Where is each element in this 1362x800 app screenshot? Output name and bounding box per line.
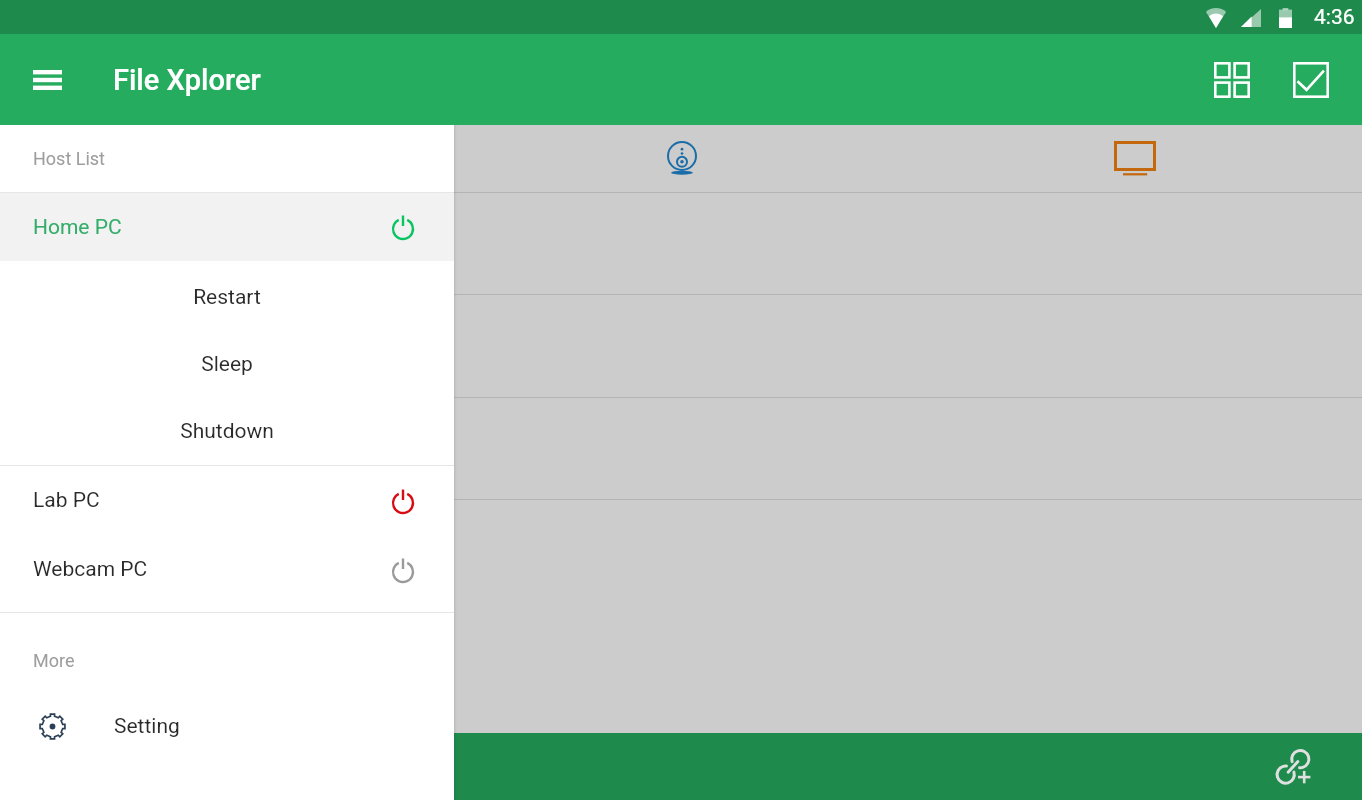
button[interactable]: Restart <box>0 264 454 331</box>
button[interactable]: Desktop PC <box>1107 130 1163 186</box>
button[interactable]: Open navigation drawer <box>9 42 85 118</box>
button[interactable]: Sleep <box>0 331 454 398</box>
staticText: Shutdown <box>180 419 274 444</box>
staticText: Webcam PC <box>33 557 383 582</box>
staticText: File Xplorer <box>113 63 261 97</box>
button[interactable]: Setting <box>0 707 454 745</box>
button[interactable]: Grid view <box>1197 45 1267 115</box>
button[interactable]: Power Webcam PC <box>383 550 423 590</box>
button[interactable]: Shutdown <box>0 398 454 465</box>
staticText: 4:36 <box>1314 5 1355 30</box>
button[interactable]: Lab PC <box>0 466 454 535</box>
staticText: Host List <box>33 148 105 169</box>
button[interactable]: Webcam PC <box>654 130 710 186</box>
staticText: Lab PC <box>33 488 383 513</box>
staticText: Sleep <box>201 352 253 377</box>
button[interactable]: Power Home PC <box>383 207 423 247</box>
button[interactable]: Webcam PC <box>0 535 454 604</box>
staticText: Restart <box>193 285 261 310</box>
button[interactable]: Home PC <box>0 193 454 261</box>
button[interactable]: Add link <box>1265 739 1321 795</box>
staticText: Home PC <box>33 215 383 240</box>
button[interactable]: Power Lab PC <box>383 481 423 521</box>
button[interactable]: Select all <box>1276 45 1346 115</box>
staticText: More <box>33 650 75 671</box>
staticText: Setting <box>114 714 180 739</box>
